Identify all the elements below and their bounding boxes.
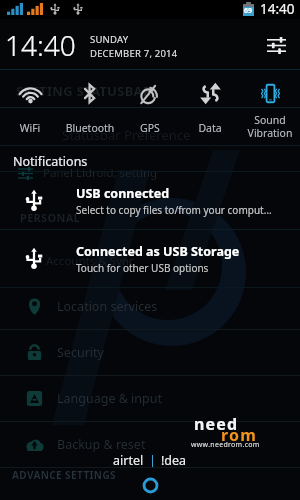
staticText: SETTING STATUSBAR — [16, 82, 152, 100]
staticText: Data — [180, 121, 240, 135]
staticText: Security — [57, 344, 104, 361]
staticText: DECEMBER 7, 2014 — [90, 47, 178, 60]
staticText: Backup & reset — [57, 436, 146, 453]
button[interactable]: Sound Vibration — [240, 70, 300, 145]
button[interactable]: WiFi — [0, 70, 60, 145]
button[interactable]: Security — [0, 329, 300, 375]
button[interactable]: Bluetooth — [60, 70, 120, 145]
staticText: PERSONAL — [20, 210, 81, 225]
staticText: SUNDAY — [90, 33, 129, 46]
staticText: airtel — [113, 452, 144, 469]
staticText: Location services — [57, 298, 158, 315]
staticText: USB connected — [76, 185, 170, 202]
staticText: Language & input — [57, 390, 162, 407]
button[interactable]: Language & input — [0, 375, 300, 421]
button[interactable]: GPS — [120, 70, 180, 145]
staticText: !dea — [161, 452, 187, 469]
staticText: WiFi — [0, 121, 60, 135]
staticText: Notifications — [13, 153, 88, 170]
staticText: Sound Vibration — [240, 113, 300, 140]
staticText: GPS — [120, 121, 180, 135]
button[interactable]: Connected as USB Storage — [0, 230, 300, 287]
staticText: need — [194, 413, 239, 435]
staticText: Accounts & Sync — [46, 253, 135, 269]
staticText: 14:40 — [5, 26, 76, 64]
staticText: Connected as USB Storage — [76, 243, 240, 260]
button[interactable]: Quick settings — [258, 27, 294, 63]
button[interactable]: Data — [180, 70, 240, 145]
staticText: Bluetooth — [60, 121, 120, 135]
button[interactable]: Location services — [0, 283, 300, 329]
staticText: rom — [221, 424, 258, 446]
button[interactable]: Backup & reset — [0, 421, 300, 467]
staticText: 14:40 — [260, 0, 295, 18]
staticText: www.needrom.com — [191, 440, 260, 450]
staticText: 69 — [244, 6, 253, 16]
staticText: Statusbar Preference — [62, 126, 191, 144]
staticText: ADVANCE SETTINGS — [12, 468, 116, 482]
button[interactable]: USB connected — [0, 172, 300, 229]
staticText: Touch for other USB options — [76, 261, 209, 275]
staticText: Panel Lidroid, setting — [43, 165, 158, 181]
staticText: Select to copy files to/from your comput… — [76, 203, 272, 217]
